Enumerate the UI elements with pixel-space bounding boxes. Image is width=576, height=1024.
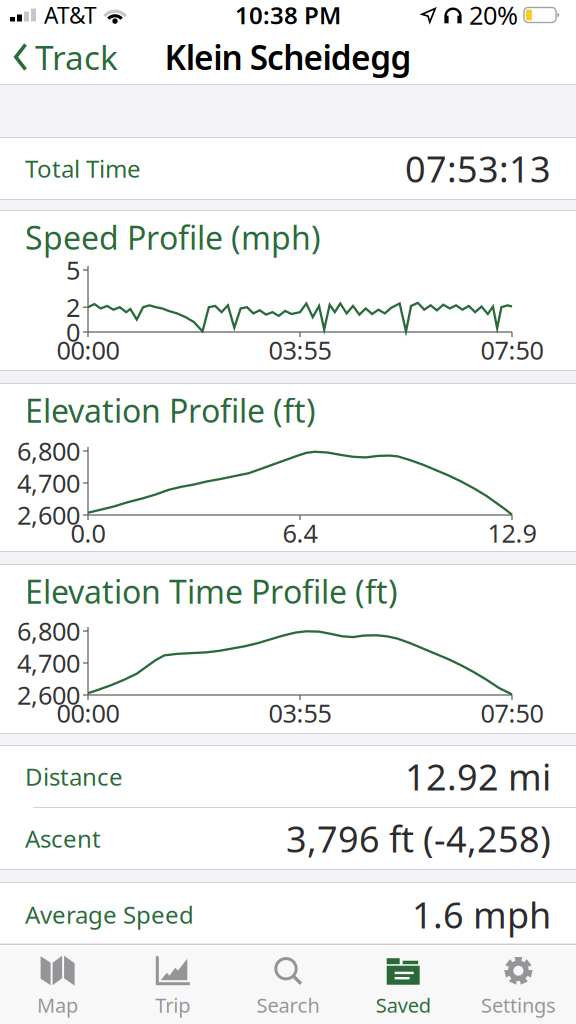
staticText: Klein Scheidegg — [165, 35, 411, 79]
staticText: 00:00 — [56, 333, 119, 367]
staticText: 20% — [469, 0, 518, 32]
staticText: Elevation Profile (ft) — [25, 389, 316, 431]
staticText: 5 — [66, 253, 80, 287]
staticText: 07:50 — [480, 696, 543, 730]
button[interactable]: Saved — [346, 955, 461, 1018]
button[interactable]: Search — [230, 955, 346, 1018]
staticText: Ascent — [25, 823, 101, 854]
staticText: 2,600 — [17, 498, 80, 532]
staticText: Distance — [25, 761, 123, 792]
staticText: Settings — [481, 992, 556, 1018]
staticText: 6.4 — [282, 516, 317, 550]
staticText: Total Time — [25, 153, 141, 184]
staticText: Elevation Time Profile (ft) — [25, 570, 398, 612]
staticText: 12.9 — [487, 516, 536, 550]
staticText: 1.6 mph — [412, 891, 551, 938]
staticText: Track — [35, 35, 118, 79]
staticText: 07:53:13 — [405, 145, 551, 192]
staticText: 03:55 — [268, 696, 331, 730]
staticText: Trip — [155, 992, 190, 1018]
button[interactable]: Settings — [461, 955, 576, 1018]
staticText: Average Speed — [25, 899, 194, 930]
staticText: 6,800 — [17, 614, 80, 648]
staticText: 10:38 PM — [235, 0, 341, 31]
button[interactable]: Track — [0, 35, 118, 79]
staticText: 2 — [66, 290, 80, 324]
button[interactable]: Trip — [115, 955, 230, 1018]
staticText: 00:00 — [56, 696, 119, 730]
staticText: Saved — [376, 992, 431, 1018]
staticText: Map — [37, 992, 78, 1018]
staticText: Speed Profile (mph) — [25, 216, 321, 258]
staticText: 2,600 — [17, 678, 80, 712]
staticText: 3,796 ft (-4,258) — [286, 815, 551, 862]
staticText: Search — [256, 992, 319, 1018]
staticText: 0 — [66, 315, 80, 349]
staticText: 4,700 — [17, 466, 80, 500]
button[interactable]: Map — [0, 955, 115, 1018]
staticText: 12.92 mi — [405, 753, 551, 800]
staticText: 07:50 — [480, 333, 543, 367]
staticText: 0.0 — [70, 516, 105, 550]
staticText: 03:55 — [268, 333, 331, 367]
staticText: AT&T — [44, 0, 97, 30]
staticText: 4,700 — [17, 646, 80, 680]
staticText: 6,800 — [17, 434, 80, 468]
